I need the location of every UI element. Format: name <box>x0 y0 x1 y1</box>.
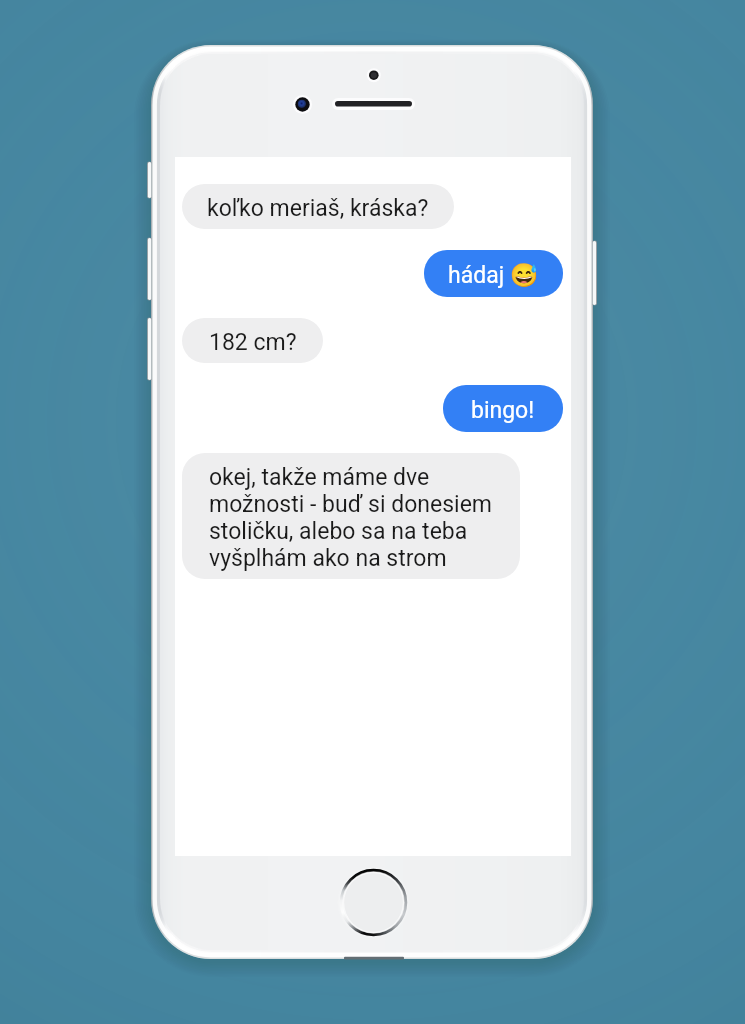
staticText: hádaj 😅 <box>448 262 539 289</box>
staticText: koľko meriaš, kráska? <box>207 195 429 222</box>
button[interactable]: Home <box>337 866 410 939</box>
button[interactable]: bingo! <box>443 385 563 432</box>
button[interactable]: hádaj 😅 <box>424 250 563 297</box>
button[interactable]: okej, takže máme dve možnosti - buď si d… <box>182 453 520 579</box>
staticText: 182 cm? <box>209 329 297 356</box>
button[interactable]: 182 cm? <box>182 318 323 363</box>
button[interactable]: koľko meriaš, kráska? <box>182 184 454 229</box>
staticText: okej, takže máme dve možnosti - buď si d… <box>209 464 493 572</box>
staticText: bingo! <box>471 397 535 424</box>
